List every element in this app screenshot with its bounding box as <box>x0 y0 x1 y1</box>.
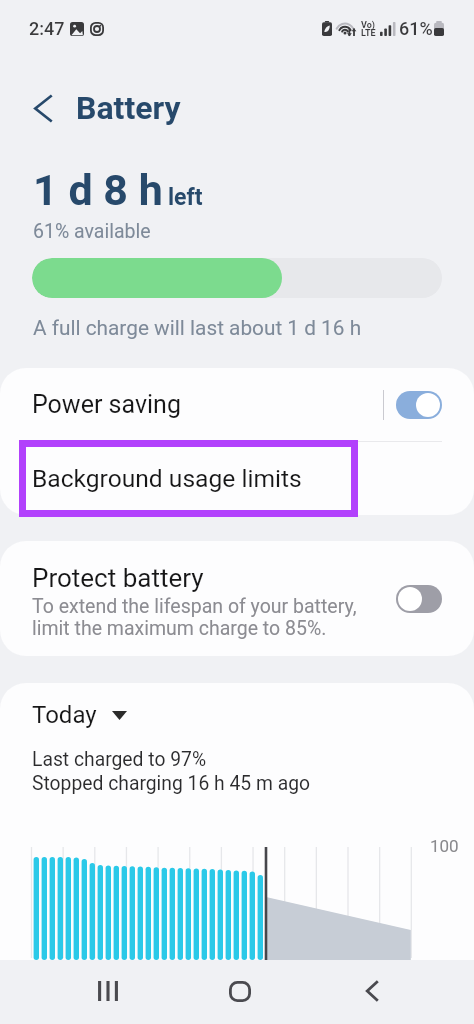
staticText: Power saving <box>32 390 383 419</box>
staticText: Background usage limits <box>32 464 302 493</box>
staticText: LTE <box>361 28 376 39</box>
staticText: 61% <box>399 18 433 39</box>
button[interactable]: Protect battery <box>0 541 474 656</box>
button[interactable]: Navigate up <box>22 86 64 130</box>
staticText: Protect battery <box>32 563 204 593</box>
staticText: 100 <box>430 836 459 856</box>
button[interactable]: Protect battery toggle <box>396 585 442 613</box>
staticText: Last charged to 97% Stopped charging 16 … <box>32 748 310 795</box>
staticText: 1 d 8 h <box>33 165 163 215</box>
button[interactable]: Power saving <box>0 368 474 441</box>
button[interactable]: Recent apps <box>69 966 146 1016</box>
staticText: 2:47 <box>29 18 65 39</box>
staticText: To extend the lifespan of your battery, … <box>32 595 357 640</box>
button[interactable]: Home <box>201 966 278 1016</box>
button[interactable]: Background usage limits <box>0 441 474 515</box>
staticText: A full charge will last about 1 d 16 h <box>33 316 362 340</box>
staticText: left <box>168 184 203 211</box>
button[interactable]: Back <box>334 966 411 1016</box>
button[interactable]: Power saving toggle <box>396 391 442 419</box>
staticText: Battery <box>76 89 181 127</box>
staticText: 61% available <box>33 220 151 243</box>
staticText: Vo) <box>361 20 375 31</box>
button[interactable]: Today <box>32 701 97 729</box>
